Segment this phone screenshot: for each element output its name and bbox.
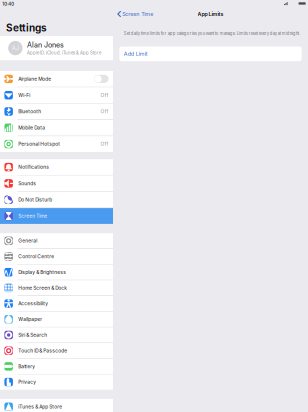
button[interactable]: Bluetooth bbox=[0, 104, 113, 120]
staticText: Notifications bbox=[18, 164, 49, 170]
button[interactable]: Siri & Search bbox=[0, 327, 113, 343]
staticText: Display & Brightness bbox=[18, 269, 66, 275]
staticText: Touch ID & Passcode bbox=[18, 348, 67, 354]
staticText: Add Limit bbox=[124, 51, 148, 57]
staticText: Wi-Fi bbox=[18, 92, 30, 98]
button[interactable]: Screen Time bbox=[0, 208, 113, 224]
button[interactable]: Add Limit bbox=[119, 46, 302, 61]
button[interactable]: AJ bbox=[0, 36, 113, 60]
staticText: Apple ID, iCloud, iTunes & App Store bbox=[27, 50, 101, 55]
staticText: Control Centre bbox=[18, 254, 54, 259]
button[interactable]: Do Not Disturb bbox=[0, 192, 113, 208]
staticText: Battery bbox=[18, 363, 35, 369]
staticText: Do Not Disturb bbox=[18, 197, 52, 203]
button[interactable]: Wi-Fi bbox=[0, 87, 113, 104]
button[interactable]: Control Centre bbox=[0, 249, 113, 265]
staticText: Off bbox=[100, 141, 108, 147]
staticText: Wallpaper bbox=[18, 316, 42, 322]
staticText: Siri & Search bbox=[18, 332, 47, 338]
button[interactable]: Personal Hotspot bbox=[0, 136, 113, 152]
staticText: Privacy bbox=[18, 379, 36, 385]
button[interactable]: Sounds bbox=[0, 175, 113, 192]
staticText: Screen Time bbox=[18, 213, 47, 219]
staticText: Personal Hotspot bbox=[18, 141, 60, 147]
staticText: Airplane Mode bbox=[18, 76, 51, 82]
button[interactable]: Mobile Data bbox=[0, 120, 113, 136]
button[interactable]: Airplane Mode bbox=[0, 71, 113, 87]
staticText: Sounds bbox=[18, 180, 36, 186]
staticText: 10:40 bbox=[2, 2, 14, 7]
staticText: Bluetooth bbox=[18, 109, 41, 114]
staticText: Off bbox=[100, 109, 108, 114]
staticText: Accessibility bbox=[18, 301, 48, 306]
button[interactable]: General bbox=[0, 233, 113, 249]
staticText: Settings bbox=[6, 22, 47, 34]
staticText: Alan Jones bbox=[27, 41, 64, 49]
button[interactable]: Notifications bbox=[0, 159, 113, 175]
staticText: Screen Time bbox=[122, 11, 153, 17]
staticText: Home Screen & Dock bbox=[18, 285, 67, 291]
button[interactable]: Home Screen & Dock bbox=[0, 280, 113, 296]
button[interactable]: Accessibility bbox=[0, 296, 113, 312]
button[interactable]: Display & Brightness bbox=[0, 265, 113, 280]
staticText: App Limits bbox=[197, 11, 223, 17]
button[interactable]: Battery bbox=[0, 359, 113, 374]
button[interactable]: iTunes & App Store bbox=[0, 399, 113, 412]
staticText: AJ bbox=[12, 45, 19, 52]
staticText: General bbox=[18, 238, 37, 244]
staticText: Off bbox=[100, 92, 108, 98]
button[interactable]: Privacy bbox=[0, 374, 113, 390]
staticText: Set daily time limits for app categories… bbox=[124, 31, 300, 36]
staticText: Mobile Data bbox=[18, 125, 45, 131]
staticText: iTunes & App Store bbox=[18, 404, 62, 410]
button[interactable]: Screen Time bbox=[113, 7, 153, 20]
button[interactable]: Touch ID & Passcode bbox=[0, 343, 113, 359]
button[interactable]: Wallpaper bbox=[0, 312, 113, 327]
